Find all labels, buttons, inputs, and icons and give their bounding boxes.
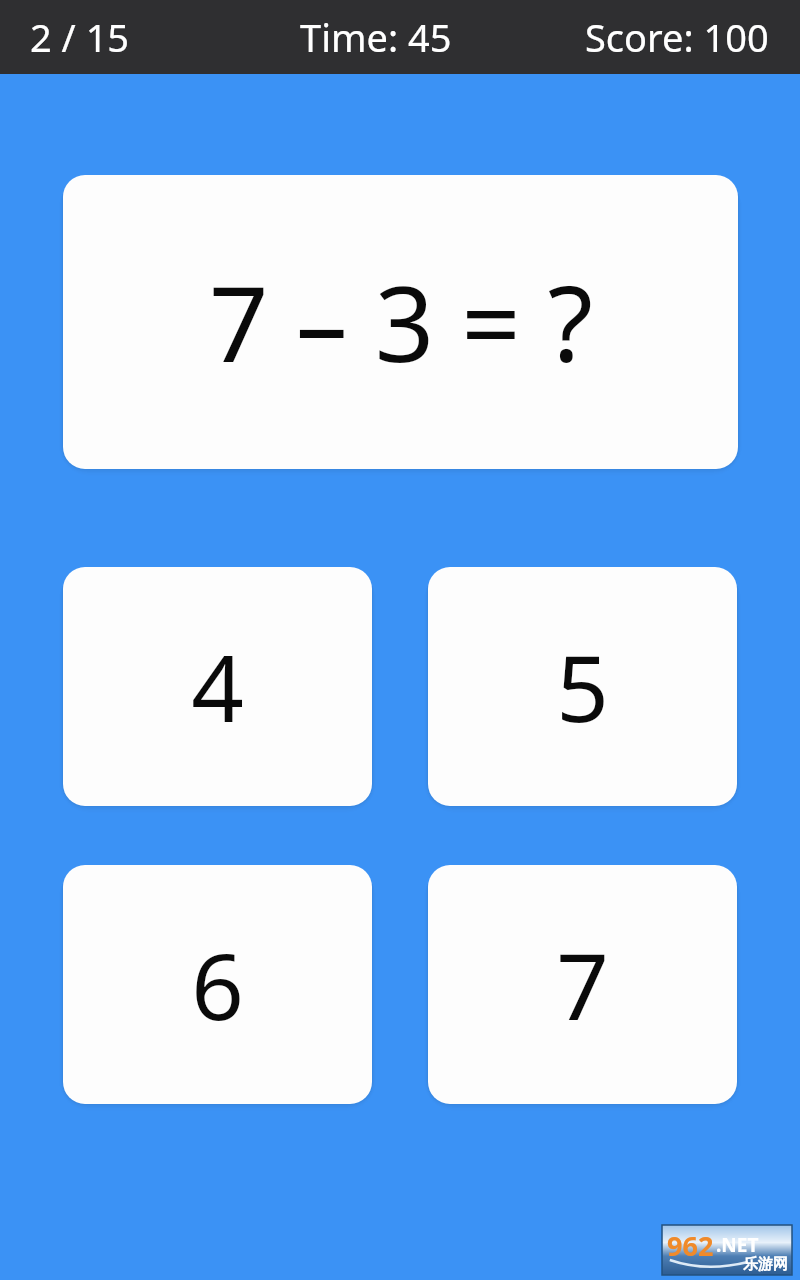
staticText: Time: 45 — [300, 11, 452, 63]
staticText: 962 — [667, 1227, 714, 1264]
staticText: Score: 100 — [585, 11, 769, 63]
staticText: 5 — [556, 624, 609, 749]
button[interactable]: Answer 7 — [428, 865, 737, 1104]
button[interactable]: Question 7 minus 3 equals — [63, 175, 738, 469]
button[interactable]: Answer 6 — [63, 865, 372, 1104]
staticText: 2 / 15 — [30, 11, 130, 63]
staticText: 7 – 3 = ? — [209, 251, 593, 393]
button[interactable]: Answer 4 — [63, 567, 372, 806]
staticText: 7 — [556, 922, 609, 1047]
staticText: 4 — [191, 624, 244, 749]
staticText: 6 — [191, 922, 244, 1047]
staticText: 乐游网 — [743, 1255, 788, 1274]
staticText: .NET — [716, 1232, 759, 1258]
button[interactable]: Answer 5 — [428, 567, 737, 806]
